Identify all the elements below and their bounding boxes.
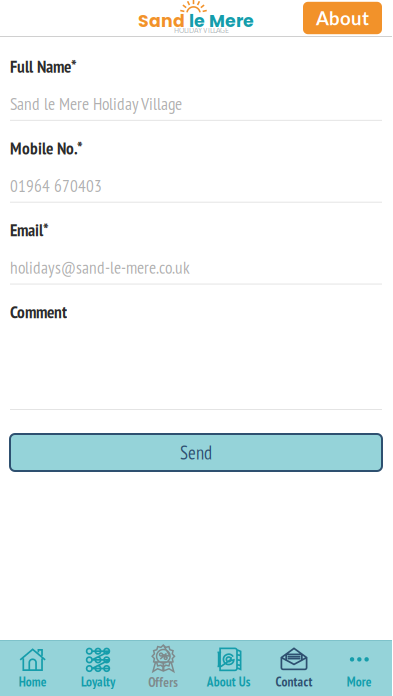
- staticText: Sand le Mere Holiday Village: [10, 92, 182, 115]
- staticText: Offers: [148, 673, 178, 691]
- button[interactable]: About Us: [196, 641, 261, 695]
- staticText: holidays@sand-le-mere.co.uk: [10, 256, 190, 278]
- staticText: Email*: [10, 219, 49, 241]
- button[interactable]: Send: [10, 434, 382, 471]
- staticText: About: [316, 7, 369, 29]
- button[interactable]: About: [303, 2, 382, 34]
- staticText: More: [347, 673, 372, 690]
- button[interactable]: More: [327, 641, 392, 695]
- button[interactable]: Contact: [261, 641, 327, 695]
- staticText: About Us: [207, 673, 251, 690]
- staticText: 01964 670403: [10, 174, 102, 197]
- staticText: Comment: [10, 301, 67, 323]
- button[interactable]: Loyalty: [65, 641, 131, 695]
- staticText: Sand: [138, 9, 185, 33]
- button[interactable]: Offers: [131, 641, 196, 695]
- staticText: Send: [180, 440, 212, 465]
- staticText: Home: [19, 673, 47, 690]
- staticText: HOLIDAY VILLAGE: [174, 26, 229, 34]
- staticText: Contact: [275, 673, 312, 690]
- staticText: Mobile No.*: [10, 137, 83, 159]
- staticText: le Mere: [185, 9, 254, 33]
- staticText: Full Name*: [10, 55, 77, 77]
- button[interactable]: Home: [0, 641, 65, 695]
- staticText: Loyalty: [81, 673, 115, 690]
